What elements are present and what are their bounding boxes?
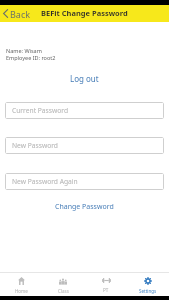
staticText: Back: [10, 8, 31, 20]
button[interactable]: Home: [0, 274, 42, 296]
button[interactable]: Change Password: [52, 201, 117, 213]
button[interactable]: Settings: [127, 274, 169, 296]
button[interactable]: Back: [3, 5, 31, 22]
staticText: New Password Again: [12, 177, 78, 186]
staticText: Home: [15, 288, 28, 294]
staticText: New Password: [12, 141, 58, 150]
button[interactable]: Current Password: [5, 102, 164, 119]
button[interactable]: Class: [42, 274, 84, 296]
staticText: Settings: [139, 288, 157, 294]
staticText: Name: Wisam: [6, 47, 42, 54]
button[interactable]: New Password Again: [5, 173, 164, 190]
staticText: BEFit Change Password: [41, 8, 128, 18]
staticText: Employee ID: root2: [6, 54, 56, 61]
button[interactable]: Log out: [67, 72, 102, 85]
staticText: Class: [58, 288, 69, 294]
staticText: Current Password: [12, 106, 69, 115]
button[interactable]: New Password: [5, 137, 164, 154]
staticText: PT: [103, 287, 109, 293]
button[interactable]: PT: [85, 274, 127, 295]
